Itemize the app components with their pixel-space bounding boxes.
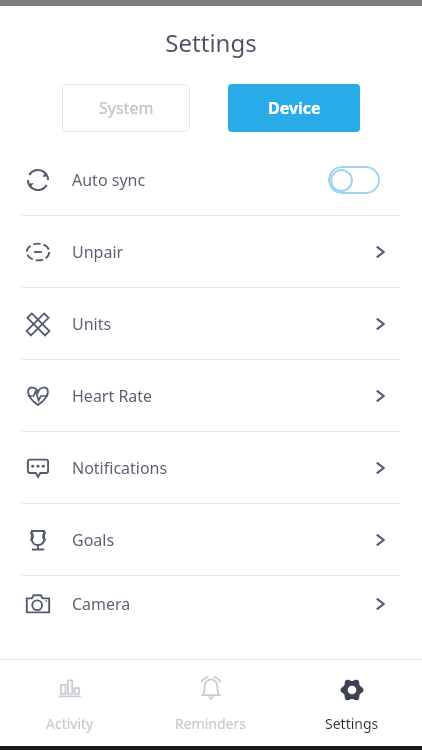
staticText: Unpair <box>72 241 370 263</box>
staticText: Goals <box>72 529 370 551</box>
staticText: Heart Rate <box>72 385 370 407</box>
staticText: Device <box>268 97 321 119</box>
staticText: Notifications <box>72 457 370 479</box>
staticText: Settings <box>325 714 379 733</box>
staticText: Auto sync <box>72 169 328 191</box>
staticText: Camera <box>72 593 370 615</box>
button[interactable]: Device <box>228 84 360 132</box>
staticText: Units <box>72 313 370 335</box>
button[interactable]: Notifications <box>0 432 422 503</box>
button[interactable]: Unpair <box>0 216 422 287</box>
staticText: Activity <box>46 714 94 733</box>
button[interactable]: Activity <box>0 674 140 733</box>
button[interactable]: Auto sync <box>0 144 422 215</box>
staticText: Settings <box>165 26 257 59</box>
button[interactable]: Reminders <box>140 674 281 733</box>
button[interactable]: System <box>62 84 190 132</box>
button[interactable]: Units <box>0 288 422 359</box>
button[interactable]: Settings <box>281 674 422 733</box>
button[interactable]: Camera <box>0 576 422 632</box>
button[interactable]: Auto sync toggle <box>328 166 380 194</box>
staticText: Reminders <box>175 714 246 733</box>
button[interactable]: Heart Rate <box>0 360 422 431</box>
button[interactable]: Goals <box>0 504 422 575</box>
staticText: System <box>99 97 154 119</box>
